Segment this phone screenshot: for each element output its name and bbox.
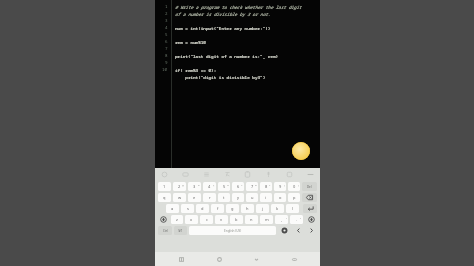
button[interactable]: r: [203, 193, 216, 202]
button[interactable]: Collapse: [306, 170, 315, 179]
button[interactable]: 5: [218, 182, 230, 191]
staticText: q: [163, 195, 166, 200]
button[interactable]: b: [230, 215, 243, 224]
staticText: b: [235, 217, 238, 222]
staticText: y: [237, 195, 240, 200]
button[interactable]: l: [286, 204, 299, 213]
staticText: rem = num%10: [175, 39, 206, 45]
button[interactable]: e: [188, 193, 201, 202]
button[interactable]: Keyboard: [282, 252, 306, 266]
button[interactable]: Voice input: [278, 226, 291, 235]
button[interactable]: i: [260, 193, 272, 202]
button[interactable]: s: [181, 204, 194, 213]
button[interactable]: t: [218, 193, 230, 202]
button[interactable]: x: [185, 215, 198, 224]
button[interactable]: Run: [292, 142, 310, 160]
staticText: # Write a program to check whether the l…: [175, 4, 302, 10]
staticText: 9: [279, 184, 282, 189]
button[interactable]: f: [211, 204, 224, 213]
staticText: h: [246, 206, 249, 211]
button[interactable]: p: [288, 193, 300, 202]
button[interactable]: 0: [288, 182, 300, 191]
staticText: 0: [293, 184, 296, 189]
staticText: print("last digit of a number is:", rem): [175, 53, 279, 59]
staticText: Del: [307, 185, 312, 189]
button[interactable]: g: [226, 204, 239, 213]
button[interactable]: o: [274, 193, 286, 202]
button[interactable]: Modes: [285, 170, 294, 179]
button[interactable]: Del: [302, 182, 317, 191]
staticText: 7: [165, 46, 168, 52]
button[interactable]: k: [271, 204, 284, 213]
button[interactable]: Settings: [202, 170, 211, 179]
staticText: 9: [165, 60, 168, 66]
staticText: ): [298, 183, 299, 186]
button[interactable]: 4: [203, 182, 216, 191]
button[interactable]: Ctrl: [158, 226, 172, 235]
staticText: p: [293, 195, 296, 200]
button[interactable]: n: [245, 215, 258, 224]
staticText: 4: [165, 25, 168, 31]
staticText: v: [220, 217, 223, 222]
staticText: e: [193, 195, 196, 200]
staticText: 1: [163, 184, 166, 189]
staticText: r: [209, 195, 211, 200]
button[interactable]: j: [256, 204, 269, 213]
staticText: 8: [165, 53, 168, 59]
button[interactable]: Shift: [305, 215, 317, 224]
staticText: English (US): [224, 229, 242, 233]
button[interactable]: Shift: [158, 215, 169, 224]
button[interactable]: a: [166, 204, 179, 213]
button[interactable]: !#1: [174, 226, 187, 235]
button[interactable]: z: [171, 215, 183, 224]
button[interactable]: Next: [306, 226, 317, 235]
button[interactable]: Recent apps: [169, 252, 193, 266]
button[interactable]: Stickers: [160, 170, 169, 179]
button[interactable]: d: [196, 204, 209, 213]
staticText: m: [265, 217, 269, 222]
button[interactable]: c: [200, 215, 213, 224]
button[interactable]: ,: [275, 215, 288, 224]
staticText: o: [279, 195, 282, 200]
staticText: 6: [237, 184, 240, 189]
staticText: 4: [208, 184, 211, 189]
button[interactable]: Translate: [223, 170, 232, 179]
button[interactable]: w: [173, 193, 186, 202]
staticText: 10: [162, 67, 168, 73]
staticText: if( rem%3 == 0):: [175, 67, 217, 73]
staticText: 3: [165, 18, 168, 24]
button[interactable]: 3: [188, 182, 201, 191]
button[interactable]: 9: [274, 182, 286, 191]
staticText: x: [190, 217, 193, 222]
button[interactable]: Previous: [293, 226, 304, 235]
button[interactable]: v: [215, 215, 228, 224]
button[interactable]: GIF: [181, 170, 190, 179]
button[interactable]: u: [246, 193, 258, 202]
staticText: w: [178, 195, 182, 200]
button[interactable]: Voice: [264, 170, 273, 179]
staticText: 2: [178, 184, 181, 189]
staticText: ,: [281, 217, 283, 222]
button[interactable]: Clipboard: [243, 170, 252, 179]
staticText: &: [255, 183, 257, 186]
button[interactable]: 7: [246, 182, 258, 191]
staticText: !: [286, 216, 287, 219]
button[interactable]: Enter: [303, 204, 317, 213]
button[interactable]: 2: [173, 182, 186, 191]
staticText: g: [231, 206, 234, 211]
button[interactable]: h: [241, 204, 254, 213]
button[interactable]: Back: [244, 252, 268, 266]
staticText: *: [269, 183, 271, 186]
button[interactable]: English (US): [189, 226, 276, 235]
button[interactable]: q: [158, 193, 171, 202]
staticText: num = int(input("Enter any number:")): [175, 25, 271, 31]
button[interactable]: m: [260, 215, 273, 224]
button[interactable]: 1: [158, 182, 171, 191]
button[interactable]: 8: [260, 182, 272, 191]
button[interactable]: Home: [207, 252, 231, 266]
staticText: 1: [165, 4, 168, 10]
button[interactable]: Backspace: [302, 193, 317, 202]
button[interactable]: y: [232, 193, 244, 202]
button[interactable]: 6: [232, 182, 244, 191]
button[interactable]: .: [290, 215, 303, 224]
